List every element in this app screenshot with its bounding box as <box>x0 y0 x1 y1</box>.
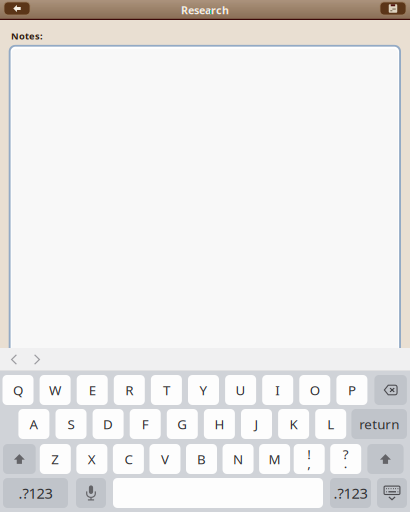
staticText: V <box>161 450 169 468</box>
button[interactable]: E <box>77 375 108 405</box>
staticText: .?123 <box>18 483 52 503</box>
button[interactable]: C <box>113 444 144 474</box>
staticText: B <box>197 450 206 468</box>
button[interactable]: R <box>114 375 145 405</box>
button[interactable]: M <box>259 444 290 474</box>
staticText: E <box>89 381 96 399</box>
button[interactable] <box>377 478 407 508</box>
staticText: H <box>214 415 224 433</box>
button[interactable]: Save <box>380 2 406 15</box>
button[interactable]: J <box>241 409 272 439</box>
staticText: T <box>163 381 170 399</box>
staticText: A <box>29 415 38 433</box>
staticText: ? <box>343 445 349 463</box>
staticText: L <box>327 415 334 433</box>
staticText: M <box>269 450 281 468</box>
staticText: Z <box>51 450 59 468</box>
staticText: Y <box>199 381 207 399</box>
button[interactable]: Y <box>188 375 219 405</box>
button[interactable]: L <box>315 409 346 439</box>
button[interactable]: I <box>262 375 293 405</box>
button[interactable]: V <box>149 444 180 474</box>
staticText: D <box>103 415 113 433</box>
button[interactable]: .?123 <box>3 478 68 508</box>
staticText: G <box>177 415 187 433</box>
staticText: F <box>142 415 149 433</box>
button[interactable]: F <box>130 409 161 439</box>
button[interactable]: H <box>204 409 235 439</box>
staticText: C <box>124 450 132 468</box>
staticText: S <box>67 415 74 433</box>
button[interactable] <box>367 444 404 474</box>
button[interactable]: ? <box>330 444 361 474</box>
button[interactable]: B <box>186 444 217 474</box>
button[interactable]: T <box>151 375 182 405</box>
staticText: U <box>236 381 246 399</box>
button[interactable]: N <box>223 444 254 474</box>
staticText: Q <box>13 381 23 399</box>
staticText: I <box>275 381 280 399</box>
button[interactable]: Back <box>4 2 30 15</box>
button[interactable] <box>374 375 407 405</box>
button[interactable]: Next field <box>25 348 48 371</box>
button[interactable]: P <box>336 375 367 405</box>
button[interactable]: Z <box>40 444 71 474</box>
button[interactable]: Previous field <box>2 348 25 371</box>
button[interactable]: O <box>299 375 330 405</box>
staticText: N <box>233 450 243 468</box>
button[interactable]: Q <box>2 375 33 405</box>
button[interactable]: ! <box>294 444 325 474</box>
staticText: W <box>49 381 61 399</box>
staticText: X <box>88 450 96 468</box>
staticText: , <box>307 454 311 472</box>
staticText: ! <box>307 445 311 463</box>
staticText: R <box>125 381 133 399</box>
button[interactable] <box>3 444 36 474</box>
button[interactable]: S <box>55 409 86 439</box>
button[interactable]: return <box>351 409 407 439</box>
button[interactable]: G <box>167 409 198 439</box>
staticText: O <box>310 381 320 399</box>
staticText: P <box>348 381 356 399</box>
button[interactable]: X <box>76 444 107 474</box>
button[interactable] <box>76 478 106 508</box>
staticText: .?123 <box>333 483 367 503</box>
staticText: K <box>290 415 298 433</box>
button[interactable]: A <box>18 409 49 439</box>
button[interactable]: U <box>225 375 256 405</box>
staticText: Notes: <box>11 30 43 42</box>
staticText: Research <box>181 3 229 17</box>
button[interactable]: .?123 <box>330 478 371 508</box>
staticText: return <box>359 415 399 433</box>
staticText: J <box>254 415 258 433</box>
button[interactable]: K <box>278 409 309 439</box>
button[interactable]: W <box>40 375 71 405</box>
staticText: . <box>344 454 348 472</box>
button[interactable]: D <box>93 409 124 439</box>
